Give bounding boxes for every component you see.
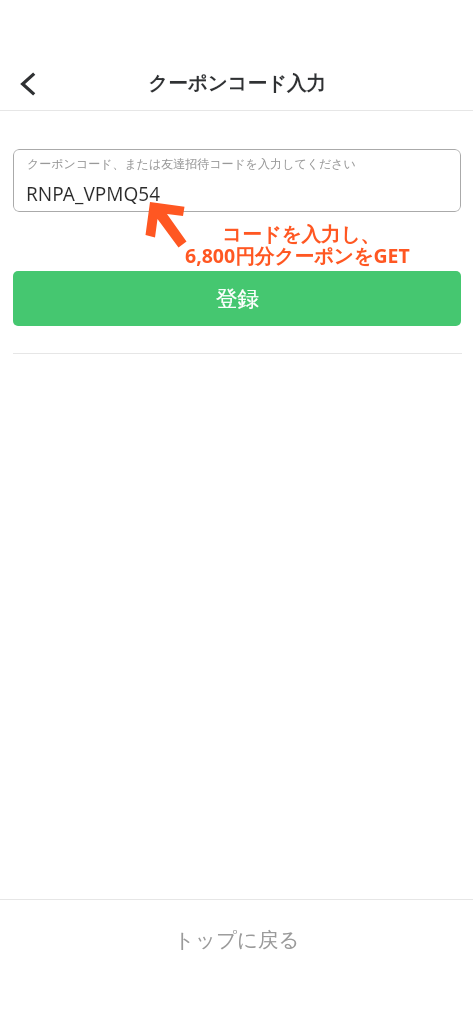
staticText: RNPA_VPMQ54 — [26, 181, 161, 207]
staticText: 6,800円分クーポンをGET — [185, 242, 410, 269]
staticText: クーポンコード、または友達招待コードを入力してください — [27, 156, 356, 171]
staticText: クーポンコード入力 — [148, 71, 326, 96]
button[interactable]: 登録 — [13, 271, 461, 326]
staticText: コードを入力し、 — [222, 222, 380, 247]
staticText: トップに戻る — [174, 927, 300, 953]
button[interactable]: クーポンコード、または友達招待コードを入力してください — [13, 149, 461, 212]
button[interactable]: トップに戻る — [0, 900, 473, 980]
button[interactable]: Back — [3, 58, 55, 110]
staticText: 登録 — [216, 285, 259, 312]
